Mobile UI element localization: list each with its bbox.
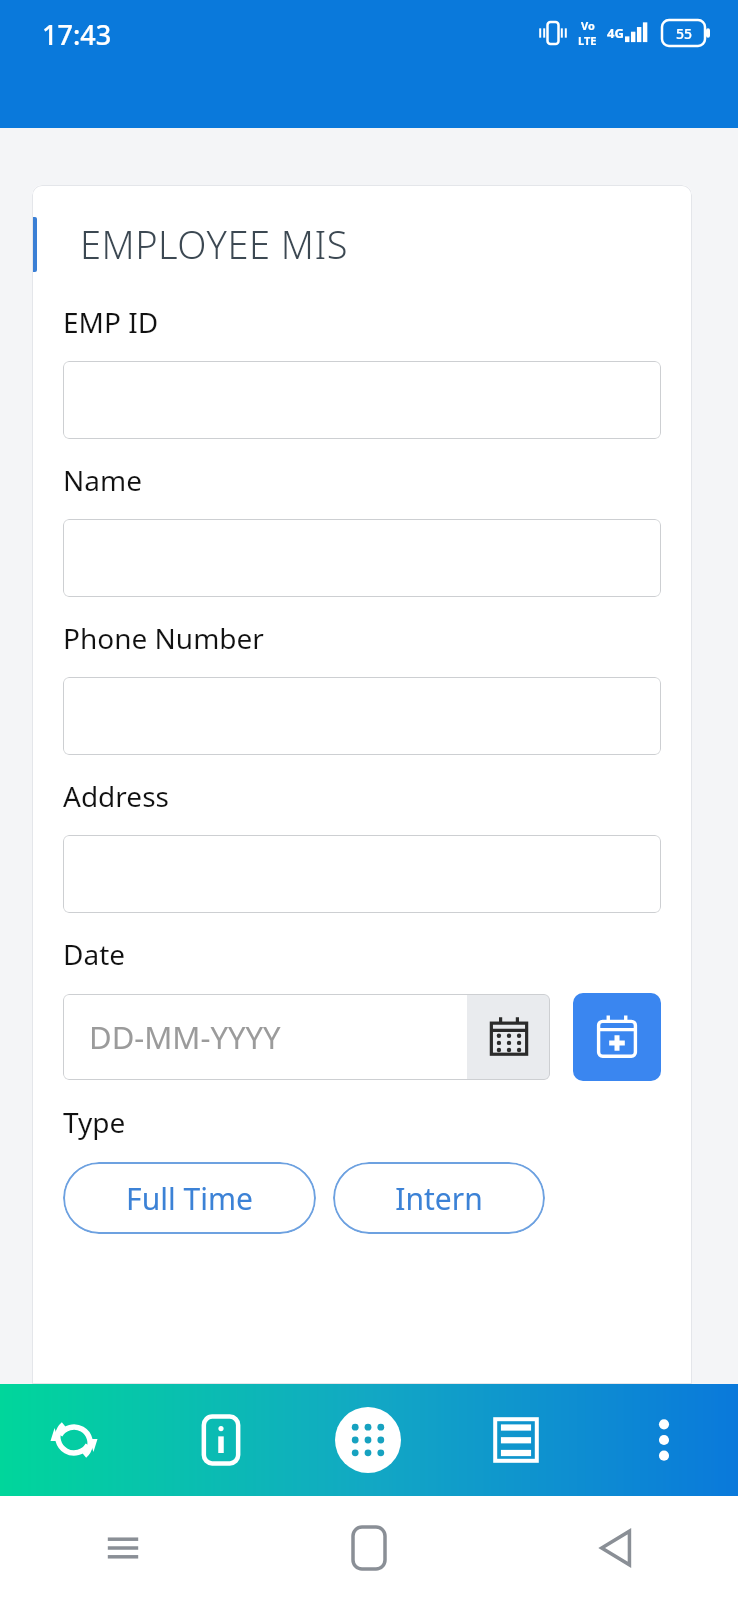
button[interactable]: Intern: [333, 1162, 545, 1234]
button[interactable]: Apps: [294, 1384, 442, 1496]
button[interactable]: More options: [590, 1384, 738, 1496]
staticText: Phone Number: [63, 619, 264, 657]
staticText: LTE: [578, 33, 597, 48]
button[interactable]: Info: [147, 1384, 294, 1496]
staticText: Name: [63, 461, 142, 499]
button[interactable]: Sync: [0, 1384, 147, 1496]
staticText: Intern: [395, 1178, 483, 1219]
staticText: Date: [63, 935, 126, 973]
button[interactable]: Pick date: [467, 994, 550, 1080]
button[interactable]: [63, 835, 661, 913]
staticText: DD-MM-YYYY: [89, 1016, 281, 1058]
button[interactable]: Add date: [573, 993, 661, 1081]
button[interactable]: Recent apps: [0, 1496, 246, 1600]
staticText: 55: [676, 24, 693, 43]
staticText: Address: [63, 777, 169, 815]
staticText: 17:43: [42, 16, 112, 53]
staticText: Type: [63, 1103, 126, 1141]
staticText: EMP ID: [63, 303, 159, 341]
button[interactable]: [63, 519, 661, 597]
button[interactable]: Back: [492, 1496, 738, 1600]
button[interactable]: Full Time: [63, 1162, 316, 1234]
staticText: Vo: [581, 18, 595, 33]
staticText: EMPLOYEE MIS: [80, 218, 349, 270]
staticText: Full Time: [126, 1178, 253, 1219]
button[interactable]: [63, 677, 661, 755]
button[interactable]: DD-MM-YYYY: [63, 994, 467, 1080]
staticText: 4G: [607, 24, 624, 42]
button[interactable]: [63, 361, 661, 439]
button[interactable]: List: [442, 1384, 590, 1496]
button[interactable]: Home: [246, 1496, 492, 1600]
